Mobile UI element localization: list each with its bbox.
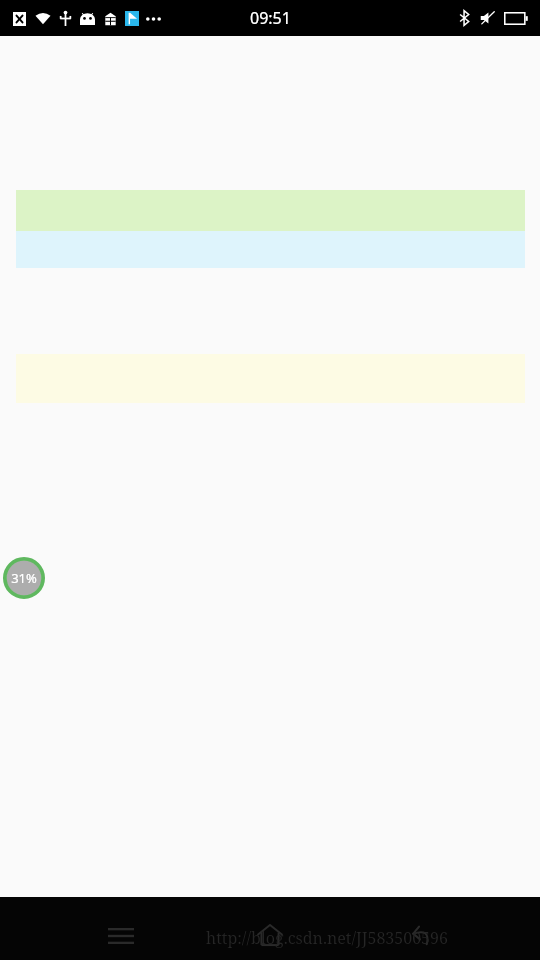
- staticText: 09:51: [250, 7, 291, 29]
- button[interactable]: Home: [245, 910, 295, 960]
- staticText: http://blog.csdn.net/JJ583500596: [206, 927, 448, 949]
- button[interactable]: Recent apps: [96, 911, 146, 960]
- button[interactable]: Progress 31 percent: [2, 556, 46, 600]
- staticText: 31%: [11, 569, 37, 587]
- button[interactable]: Back: [395, 910, 445, 960]
